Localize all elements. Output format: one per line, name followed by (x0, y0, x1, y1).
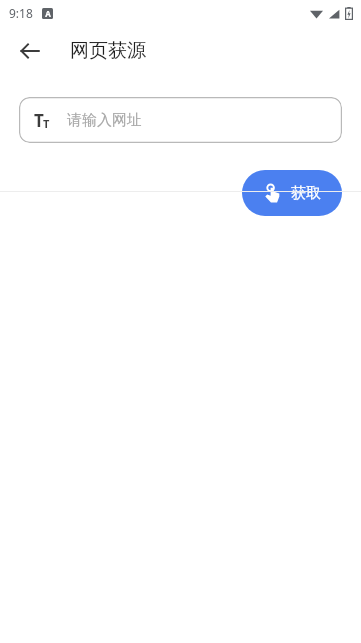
staticText: T (34, 109, 44, 132)
staticText: 获取 (291, 184, 321, 203)
button[interactable]: T (19, 97, 342, 143)
staticText: 9:18 (9, 5, 33, 21)
staticText: 请输入网址 (67, 111, 142, 130)
button[interactable]: Back (10, 31, 50, 71)
staticText: A (45, 8, 51, 19)
staticText: T (43, 116, 50, 131)
button[interactable]: 获取 (242, 170, 342, 216)
staticText: 网页获源 (70, 39, 146, 63)
